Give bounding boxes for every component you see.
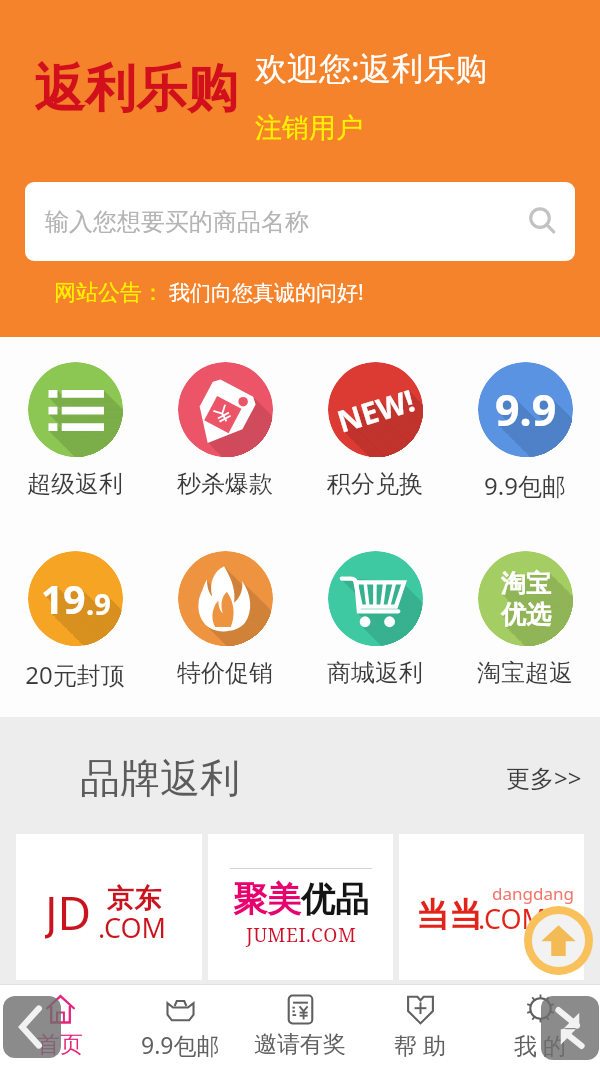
staticText: 19 [57,588,102,641]
staticText: 优选 [520,618,570,646]
staticText: 9.9 [515,400,573,457]
staticText: 淘宝 [511,578,561,609]
staticText: 优选 [521,619,571,646]
button[interactable]: JD [16,834,202,980]
staticText: 淘宝 [532,599,573,630]
staticText: .9 [118,616,123,646]
staticText: NEW! [348,395,423,457]
button[interactable]: 输入您想要买的商品名称 [25,182,575,261]
staticText: NEW! [343,390,423,453]
staticText: 9.9 [537,422,573,457]
button[interactable]: 我 的 [480,985,600,1067]
staticText: 优选 [538,636,573,646]
staticText: 优选 [539,637,573,646]
staticText: NEW! [346,393,423,456]
staticText: 淘宝 [557,624,573,646]
button[interactable]: NEW! [300,362,450,499]
button[interactable]: 9.9包邮 [120,985,240,1067]
button[interactable]: 首页 [0,985,120,1067]
button[interactable]: 秒杀爆款 [150,362,300,499]
staticText: 19 [81,612,123,646]
button[interactable]: 9.9 [450,362,600,502]
staticText: 9.9 [535,420,573,457]
staticText: NEW! [352,399,423,457]
staticText: NEW! [388,435,423,457]
button[interactable]: 邀请有奖 [240,985,360,1067]
button[interactable]: Back [3,996,61,1058]
button[interactable]: 帮 助 [360,985,480,1067]
staticText: 19 [93,624,123,646]
button[interactable]: Scroll to top [524,906,593,975]
staticText: 优选 [517,615,567,646]
staticText: 9.9 [521,406,573,457]
staticText: NEW! [361,408,423,457]
staticText: 9.9 [532,417,573,457]
staticText: 9.9 [556,441,573,457]
staticText: NEW! [394,441,423,457]
staticText: 欢迎您:返利乐购 [255,46,488,90]
staticText: 淘宝 [524,591,573,622]
staticText: 淘宝 [515,582,565,613]
staticText: 淘宝 [533,600,573,631]
staticText: 优选 [526,624,573,646]
staticText: 优选 [513,611,563,642]
staticText: 淘宝 [554,621,573,646]
button[interactable]: 超级返利 [0,362,150,499]
staticText: 9.9包邮 [141,1029,220,1060]
staticText: 19 [102,633,123,646]
staticText: .9 [100,598,123,637]
staticText: NEW! [384,431,423,457]
staticText: NEW! [368,415,423,457]
staticText: 9.9 [547,432,573,457]
staticText: 优选 [505,603,555,634]
staticText: 输入您想要买的商品名称 [45,207,309,237]
button[interactable]: 淘宝 [450,551,600,688]
staticText: 9.9 [525,410,573,457]
button[interactable]: 当当 [399,834,584,980]
staticText: 聚美 [233,878,301,921]
staticText: 9.9 [557,442,573,457]
button[interactable]: 19 [0,551,150,691]
staticText: NEW! [334,381,421,444]
staticText: 9.9 [524,409,573,457]
staticText: NEW! [400,447,423,457]
staticText: 19 [45,576,90,629]
staticText: 9.9 [550,435,573,457]
staticText: NEW! [339,386,423,449]
staticText: 优选 [518,616,568,646]
button[interactable]: 商城返利 [300,551,450,688]
staticText: 19 [76,607,121,646]
staticText: 优选 [527,625,573,646]
staticText: 特价促销 [177,658,273,688]
staticText: 优选 [529,627,573,646]
staticText: 9.9 [511,396,573,455]
staticText: 品牌返利 [80,753,240,803]
staticText: NEW! [386,433,423,457]
staticText: 优选 [532,630,573,646]
staticText: 淘宝 [547,614,573,645]
button[interactable]: 特价促销 [150,551,300,688]
staticText: NEW! [357,404,423,457]
button[interactable]: 更多>> [506,759,582,792]
staticText: 淘宝 [550,617,573,646]
staticText: NEW! [367,414,423,457]
staticText: NEW! [398,445,423,457]
staticText: 淘宝 [560,627,573,646]
staticText: .9 [99,597,123,636]
staticText: 淘宝 [543,610,573,641]
staticText: 19 [43,574,88,627]
staticText: 秒杀爆款 [177,469,273,499]
staticText: 淘宝 [519,586,569,617]
staticText: 淘宝 [555,622,573,646]
staticText: 淘宝 [548,615,573,646]
staticText: 19 [48,579,93,632]
staticText: 淘宝 [517,584,567,615]
staticText: 优选 [503,601,553,632]
button[interactable]: Shrink window [541,996,599,1060]
staticText: .COM [478,900,546,937]
button[interactable]: 聚美 [208,834,393,980]
